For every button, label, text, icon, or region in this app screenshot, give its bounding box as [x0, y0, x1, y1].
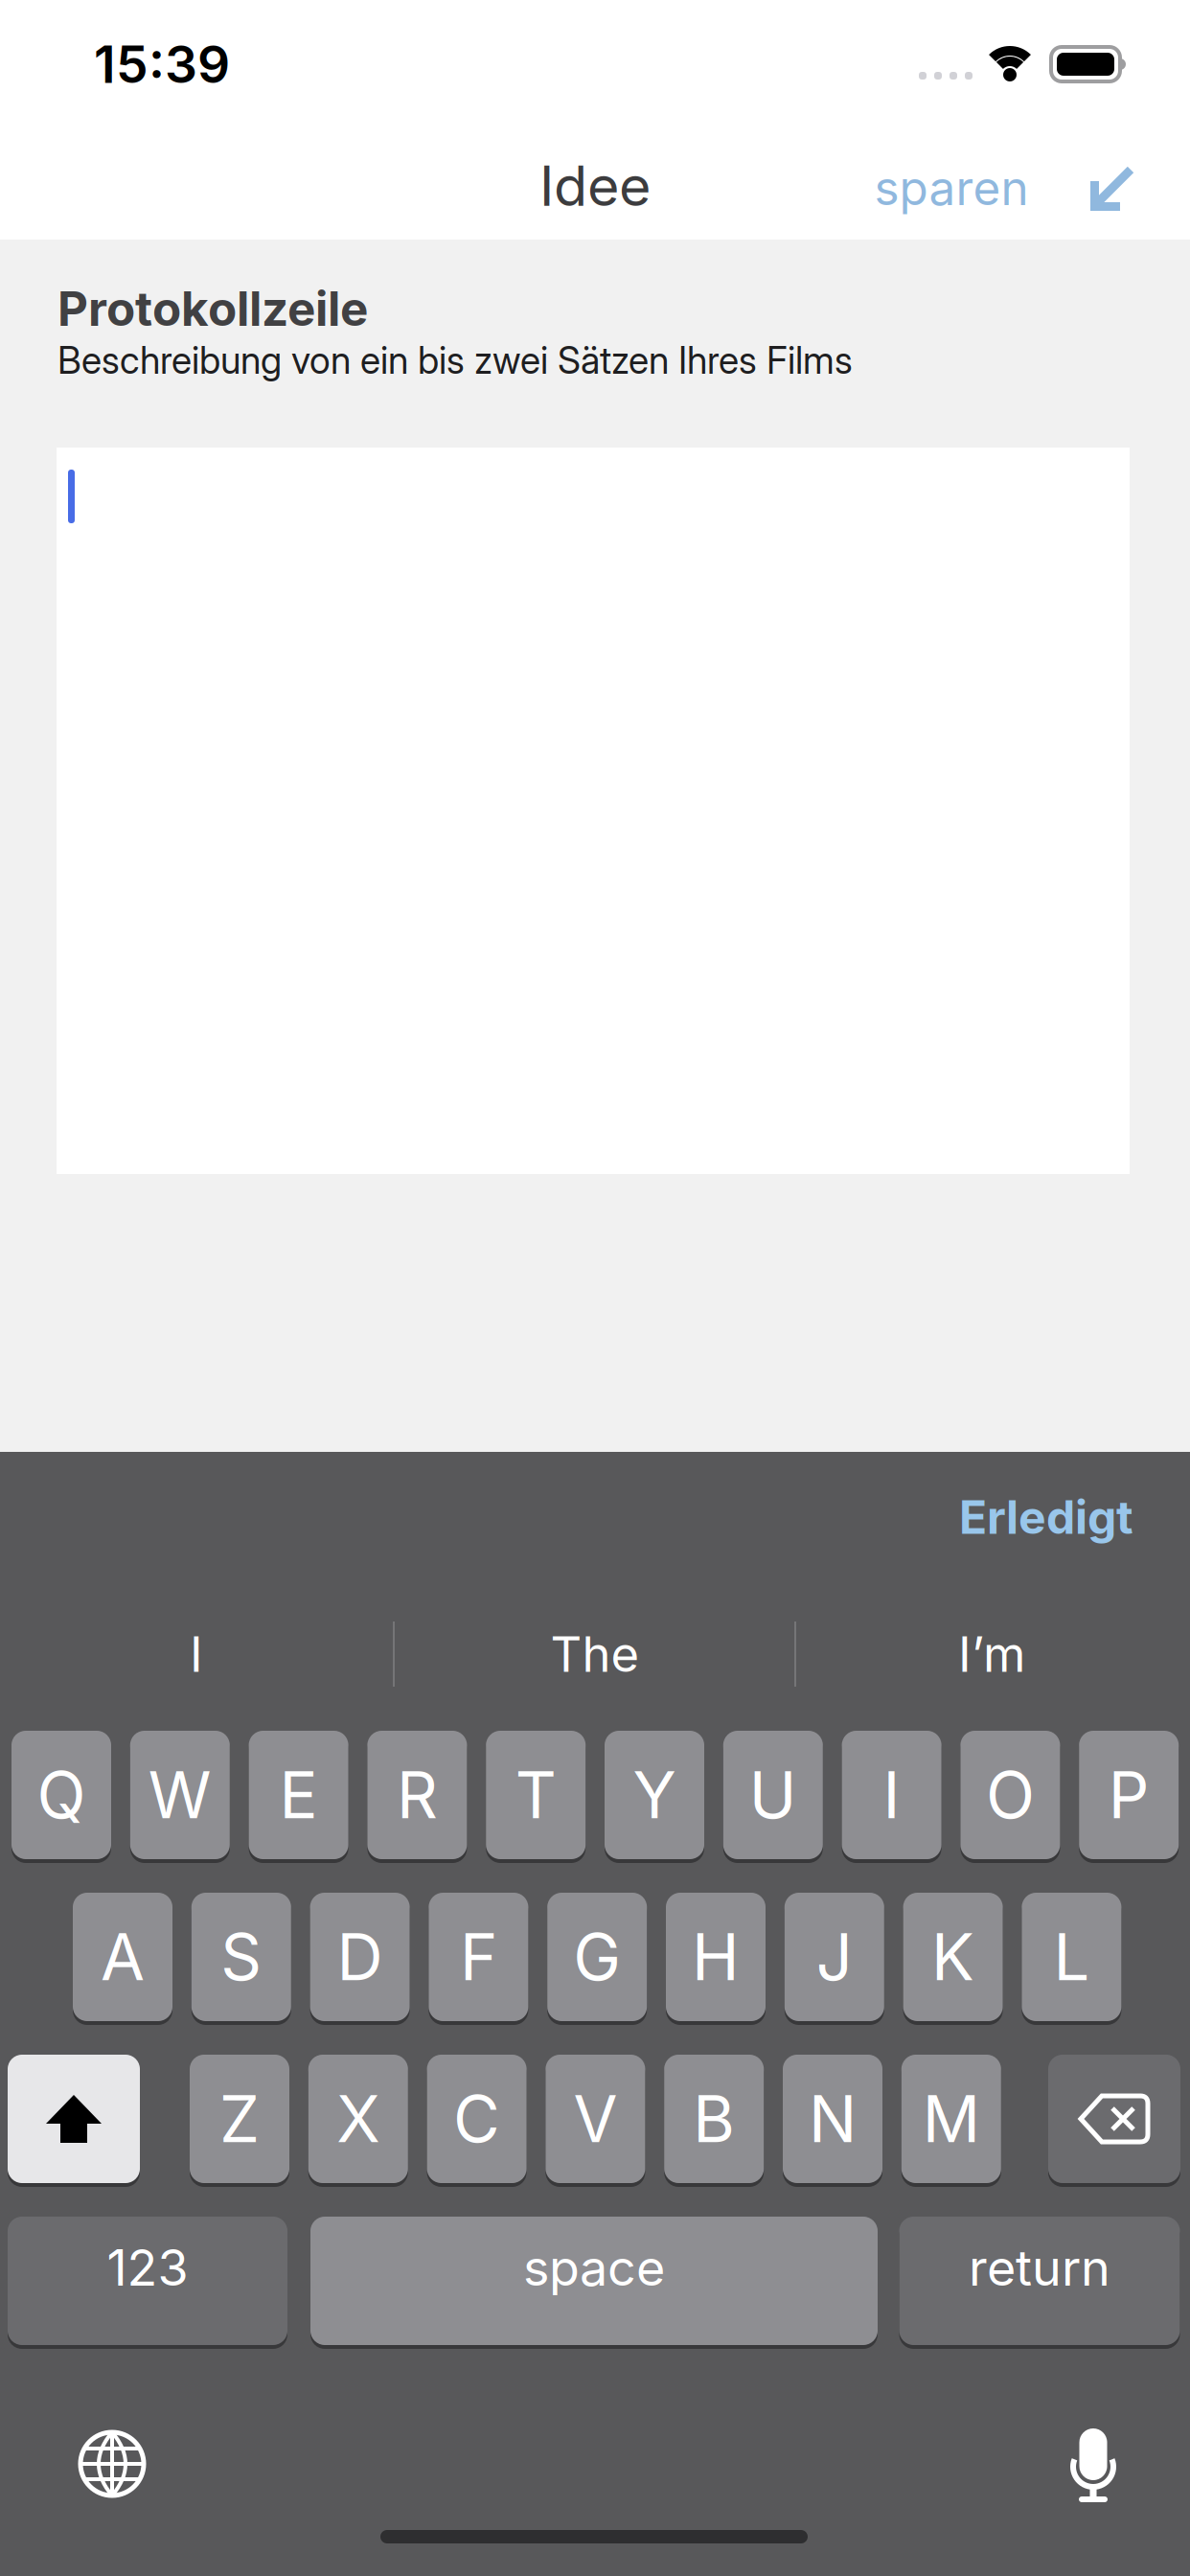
button[interactable]: Diktieren: [1071, 2428, 1115, 2503]
staticText: I: [190, 1625, 203, 1683]
staticText: space: [523, 2238, 665, 2297]
button[interactable]: S: [191, 1891, 291, 2023]
button[interactable]: V: [546, 2053, 645, 2185]
staticText: B: [693, 2081, 735, 2157]
button[interactable]: D: [310, 1891, 410, 2023]
button[interactable]: Y: [605, 1729, 704, 1861]
staticText: W: [148, 1757, 212, 1833]
button[interactable]: W: [130, 1729, 230, 1861]
button[interactable]: P: [1079, 1729, 1179, 1861]
staticText: Beschreibung von ein bis zwei Sätzen Ihr…: [57, 338, 853, 382]
button[interactable]: G: [547, 1891, 647, 2023]
button[interactable]: J: [785, 1891, 884, 2023]
staticText: D: [337, 1919, 383, 1995]
button[interactable]: L: [1022, 1891, 1121, 2023]
button[interactable]: Q: [11, 1729, 111, 1861]
staticText: L: [1053, 1919, 1090, 1995]
staticText: 123: [107, 2238, 188, 2297]
staticText: S: [221, 1919, 262, 1995]
button[interactable]: F: [429, 1891, 528, 2023]
button[interactable]: return: [899, 2215, 1180, 2347]
staticText: Z: [219, 2081, 260, 2157]
button[interactable]: Tastatur wechseln: [74, 2426, 150, 2502]
button[interactable]: sparen: [874, 160, 1029, 216]
button[interactable]: T: [486, 1729, 586, 1861]
staticText: Y: [633, 1757, 676, 1833]
staticText: M: [922, 2081, 980, 2157]
button[interactable]: O: [960, 1729, 1060, 1861]
staticText: O: [986, 1757, 1035, 1833]
staticText: sparen: [874, 160, 1029, 216]
staticText: N: [809, 2081, 857, 2157]
button[interactable]: Minimieren: [1077, 154, 1144, 221]
staticText: 15:39: [94, 34, 230, 94]
staticText: J: [816, 1919, 853, 1995]
button[interactable]: B: [664, 2053, 764, 2185]
staticText: I’m: [958, 1625, 1025, 1683]
staticText: Erledigt: [959, 1490, 1133, 1544]
staticText: I: [883, 1757, 900, 1833]
staticText: Q: [37, 1757, 86, 1833]
button[interactable]: Texteingabe: [57, 448, 1130, 1174]
staticText: H: [692, 1919, 740, 1995]
button[interactable]: M: [901, 2053, 1001, 2185]
staticText: Protokollzeile: [57, 281, 368, 336]
button[interactable]: Umschalt: [8, 2053, 140, 2185]
button[interactable]: I: [14, 1606, 378, 1702]
button[interactable]: Z: [190, 2053, 289, 2185]
staticText: Idee: [539, 154, 651, 218]
button[interactable]: space: [310, 2215, 878, 2347]
staticText: return: [969, 2238, 1110, 2297]
staticText: U: [749, 1757, 797, 1833]
button[interactable]: The: [413, 1606, 777, 1702]
staticText: G: [573, 1919, 621, 1995]
staticText: The: [550, 1625, 640, 1683]
button[interactable]: U: [723, 1729, 823, 1861]
button[interactable]: X: [308, 2053, 408, 2185]
staticText: E: [279, 1757, 318, 1833]
button[interactable]: I’m: [810, 1606, 1174, 1702]
staticText: R: [397, 1757, 438, 1833]
button[interactable]: E: [249, 1729, 348, 1861]
button[interactable]: 123: [8, 2215, 287, 2347]
button[interactable]: R: [367, 1729, 467, 1861]
staticText: T: [515, 1757, 556, 1833]
button[interactable]: A: [73, 1891, 172, 2023]
staticText: C: [453, 2081, 500, 2157]
button[interactable]: K: [903, 1891, 1003, 2023]
button[interactable]: Löschen: [1048, 2053, 1180, 2185]
staticText: V: [573, 2081, 617, 2157]
staticText: P: [1108, 1757, 1149, 1833]
staticText: F: [460, 1919, 497, 1995]
button[interactable]: C: [427, 2053, 527, 2185]
button[interactable]: I: [842, 1729, 941, 1861]
button[interactable]: Erledigt: [959, 1490, 1133, 1544]
button[interactable]: H: [666, 1891, 766, 2023]
button[interactable]: N: [783, 2053, 882, 2185]
staticText: X: [337, 2081, 380, 2157]
staticText: K: [931, 1919, 975, 1995]
staticText: A: [101, 1919, 145, 1995]
